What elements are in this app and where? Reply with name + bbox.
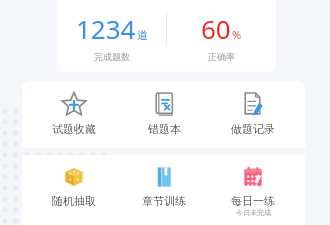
button[interactable]: 随机抽取 [36,163,112,210]
staticText: 道 [137,28,148,42]
button[interactable]: 试题收藏 [36,89,112,138]
staticText: 完成题数 [94,51,130,62]
staticText: 随机抽取 [52,194,96,208]
button[interactable]: 错题本 [126,89,202,138]
button[interactable]: 做题记录 [215,89,291,138]
staticText: 60 [201,11,231,46]
other: 做题记录 [240,91,266,117]
other: 每日一练 [241,165,265,189]
staticText: 1234 [76,11,136,46]
staticText: 错题本 [148,122,181,136]
button[interactable]: 章节训练 [126,163,202,210]
other: 章节训练 [152,165,176,189]
button[interactable]: 每日一练 [215,163,291,219]
staticText: 章节训练 [142,194,186,208]
staticText: 每日一练 [231,194,275,208]
staticText: 今日未完成 [236,208,271,217]
staticText: % [232,27,242,42]
other: 随机抽取 [62,165,86,189]
other: 错题本 [151,91,177,117]
staticText: 试题收藏 [52,122,96,136]
other: 试题收藏 [61,91,87,117]
staticText: 做题记录 [231,122,275,136]
staticText: 正确率 [208,51,235,62]
